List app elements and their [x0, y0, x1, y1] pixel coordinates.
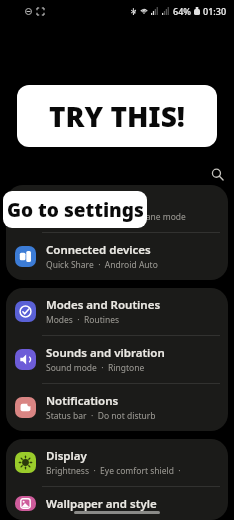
staticText: Connected devices — [46, 242, 151, 258]
staticText: Wallpaper and style — [46, 496, 157, 511]
button[interactable]: Search — [206, 163, 228, 185]
staticText: 64% — [173, 5, 191, 17]
button[interactable]: Display — [6, 439, 228, 486]
staticText: Status bar · Do not disturb — [46, 410, 156, 422]
staticText: Modes · Routines — [46, 314, 120, 326]
staticText: Display — [46, 448, 87, 464]
button[interactable]: TRY THIS! — [17, 85, 217, 147]
staticText: Go to settings — [7, 197, 144, 223]
button[interactable]: Wallpaper and style — [6, 487, 228, 520]
staticText: Sound mode · Ringtone — [46, 362, 145, 374]
staticText: Brightness · Eye comfort shield · Naviga… — [46, 465, 219, 477]
staticText: Sounds and vibration — [46, 345, 165, 361]
staticText: Wi-Fi · Bluetooth · Airplane mode — [46, 211, 186, 223]
button[interactable]: Connections — [6, 185, 228, 232]
staticText: Notifications — [46, 393, 119, 409]
staticText: TRY THIS! — [49, 97, 185, 135]
button[interactable]: Modes and Routines — [6, 288, 228, 335]
button[interactable]: Connected devices — [6, 233, 228, 280]
staticText: Modes and Routines — [46, 297, 161, 313]
staticText: Connections — [46, 194, 116, 210]
button[interactable]: Go to settings — [3, 191, 147, 228]
staticText: Quick Share · Android Auto — [46, 259, 158, 271]
staticText: 01:30 — [203, 5, 227, 17]
button[interactable]: Notifications — [6, 384, 228, 431]
button[interactable]: Sounds and vibration — [6, 336, 228, 383]
